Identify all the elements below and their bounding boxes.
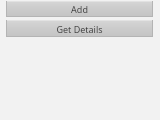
staticText: Get Details <box>56 23 103 35</box>
button[interactable]: Get Details <box>6 20 153 37</box>
button[interactable]: Add <box>6 1 153 17</box>
staticText: Add <box>71 3 88 15</box>
